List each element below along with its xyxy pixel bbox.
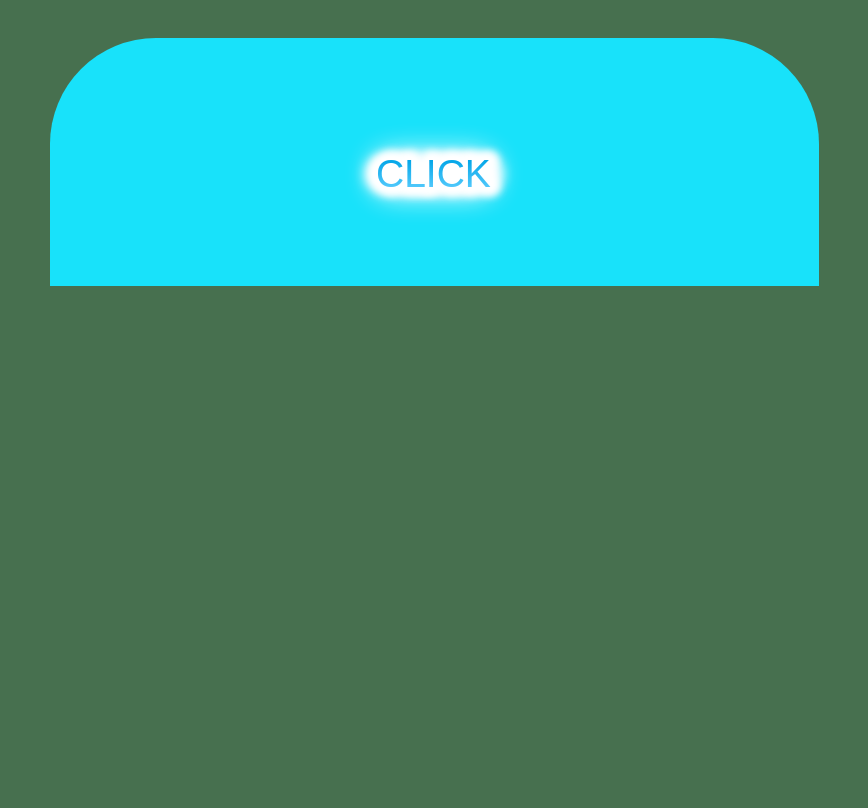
button[interactable]: CLICK button panel [50,38,819,286]
staticText: CLICK [376,152,491,196]
